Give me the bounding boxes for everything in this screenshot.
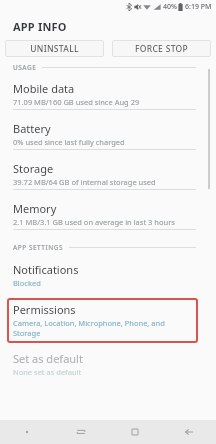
button[interactable]: Storage — [0, 159, 216, 189]
staticText: 39.72 MB/64 GB of internal storage used — [13, 177, 156, 187]
button[interactable]: Home — [108, 420, 162, 444]
button[interactable]: Assistant — [0, 420, 54, 444]
staticText: Mobile data — [13, 81, 75, 96]
staticText: Notifications — [13, 262, 79, 277]
staticText: 40% — [163, 2, 177, 12]
staticText: FORCE STOP — [135, 43, 188, 55]
staticText: 0% used since last fully charged — [13, 137, 125, 147]
staticText: Battery — [13, 121, 51, 136]
staticText: Memory — [13, 201, 57, 216]
button[interactable]: Set as default — [0, 349, 216, 379]
staticText: Blocked — [13, 278, 41, 288]
button[interactable]: Memory — [0, 199, 216, 229]
staticText: 2.1 MB/3.1 GB used on average in last 3 … — [13, 217, 175, 227]
staticText: Camera, Location, Microphone, Phone, and… — [13, 318, 192, 338]
button[interactable]: Notifications — [0, 260, 216, 290]
button[interactable]: Permissions — [7, 298, 198, 343]
button[interactable]: Battery — [0, 119, 216, 149]
staticText: APP SETTINGS — [13, 243, 64, 252]
button[interactable]: Back — [162, 420, 216, 444]
staticText: Permissions — [13, 302, 76, 317]
button[interactable]: UNINSTALL — [5, 40, 104, 57]
staticText: APP INFO — [13, 19, 67, 34]
staticText: 6:19 PM — [185, 2, 212, 12]
staticText: 71.09 MB/160 GB used since Aug 29 — [13, 97, 140, 107]
staticText: UNINSTALL — [30, 43, 79, 55]
staticText: Set as default — [13, 351, 83, 366]
staticText: None set as default — [13, 367, 82, 377]
button[interactable]: FORCE STOP — [112, 40, 211, 57]
staticText: Storage — [13, 161, 54, 176]
staticText: USAGE — [13, 63, 37, 72]
button[interactable]: Mobile data — [0, 79, 216, 109]
button[interactable]: Recents — [54, 420, 108, 444]
